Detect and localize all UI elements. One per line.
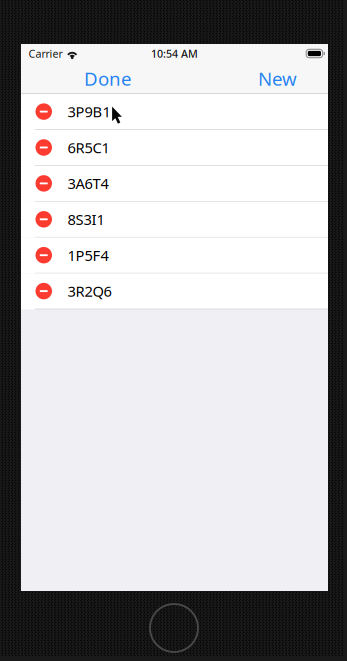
button[interactable]: 1P5F4 bbox=[21, 238, 328, 273]
button[interactable]: 3P9B1 bbox=[21, 94, 328, 130]
button[interactable]: New bbox=[248, 61, 307, 96]
staticText: 3P9B1 bbox=[67, 102, 110, 121]
button[interactable]: Done bbox=[74, 61, 142, 96]
staticText: Carrier bbox=[28, 46, 62, 61]
staticText: 3A6T4 bbox=[67, 174, 108, 193]
staticText: 10:54 AM bbox=[151, 46, 198, 61]
staticText: 8S3I1 bbox=[67, 210, 104, 229]
staticText: Done bbox=[84, 66, 132, 91]
staticText: 6R5C1 bbox=[67, 138, 109, 157]
staticText: 3R2Q6 bbox=[67, 281, 111, 301]
button[interactable]: 6R5C1 bbox=[21, 130, 328, 166]
button[interactable]: 8S3I1 bbox=[21, 202, 328, 238]
button[interactable]: 3R2Q6 bbox=[21, 273, 328, 309]
button[interactable]: 3A6T4 bbox=[21, 166, 328, 202]
staticText: New bbox=[258, 66, 297, 91]
staticText: 1P5F4 bbox=[67, 245, 108, 265]
